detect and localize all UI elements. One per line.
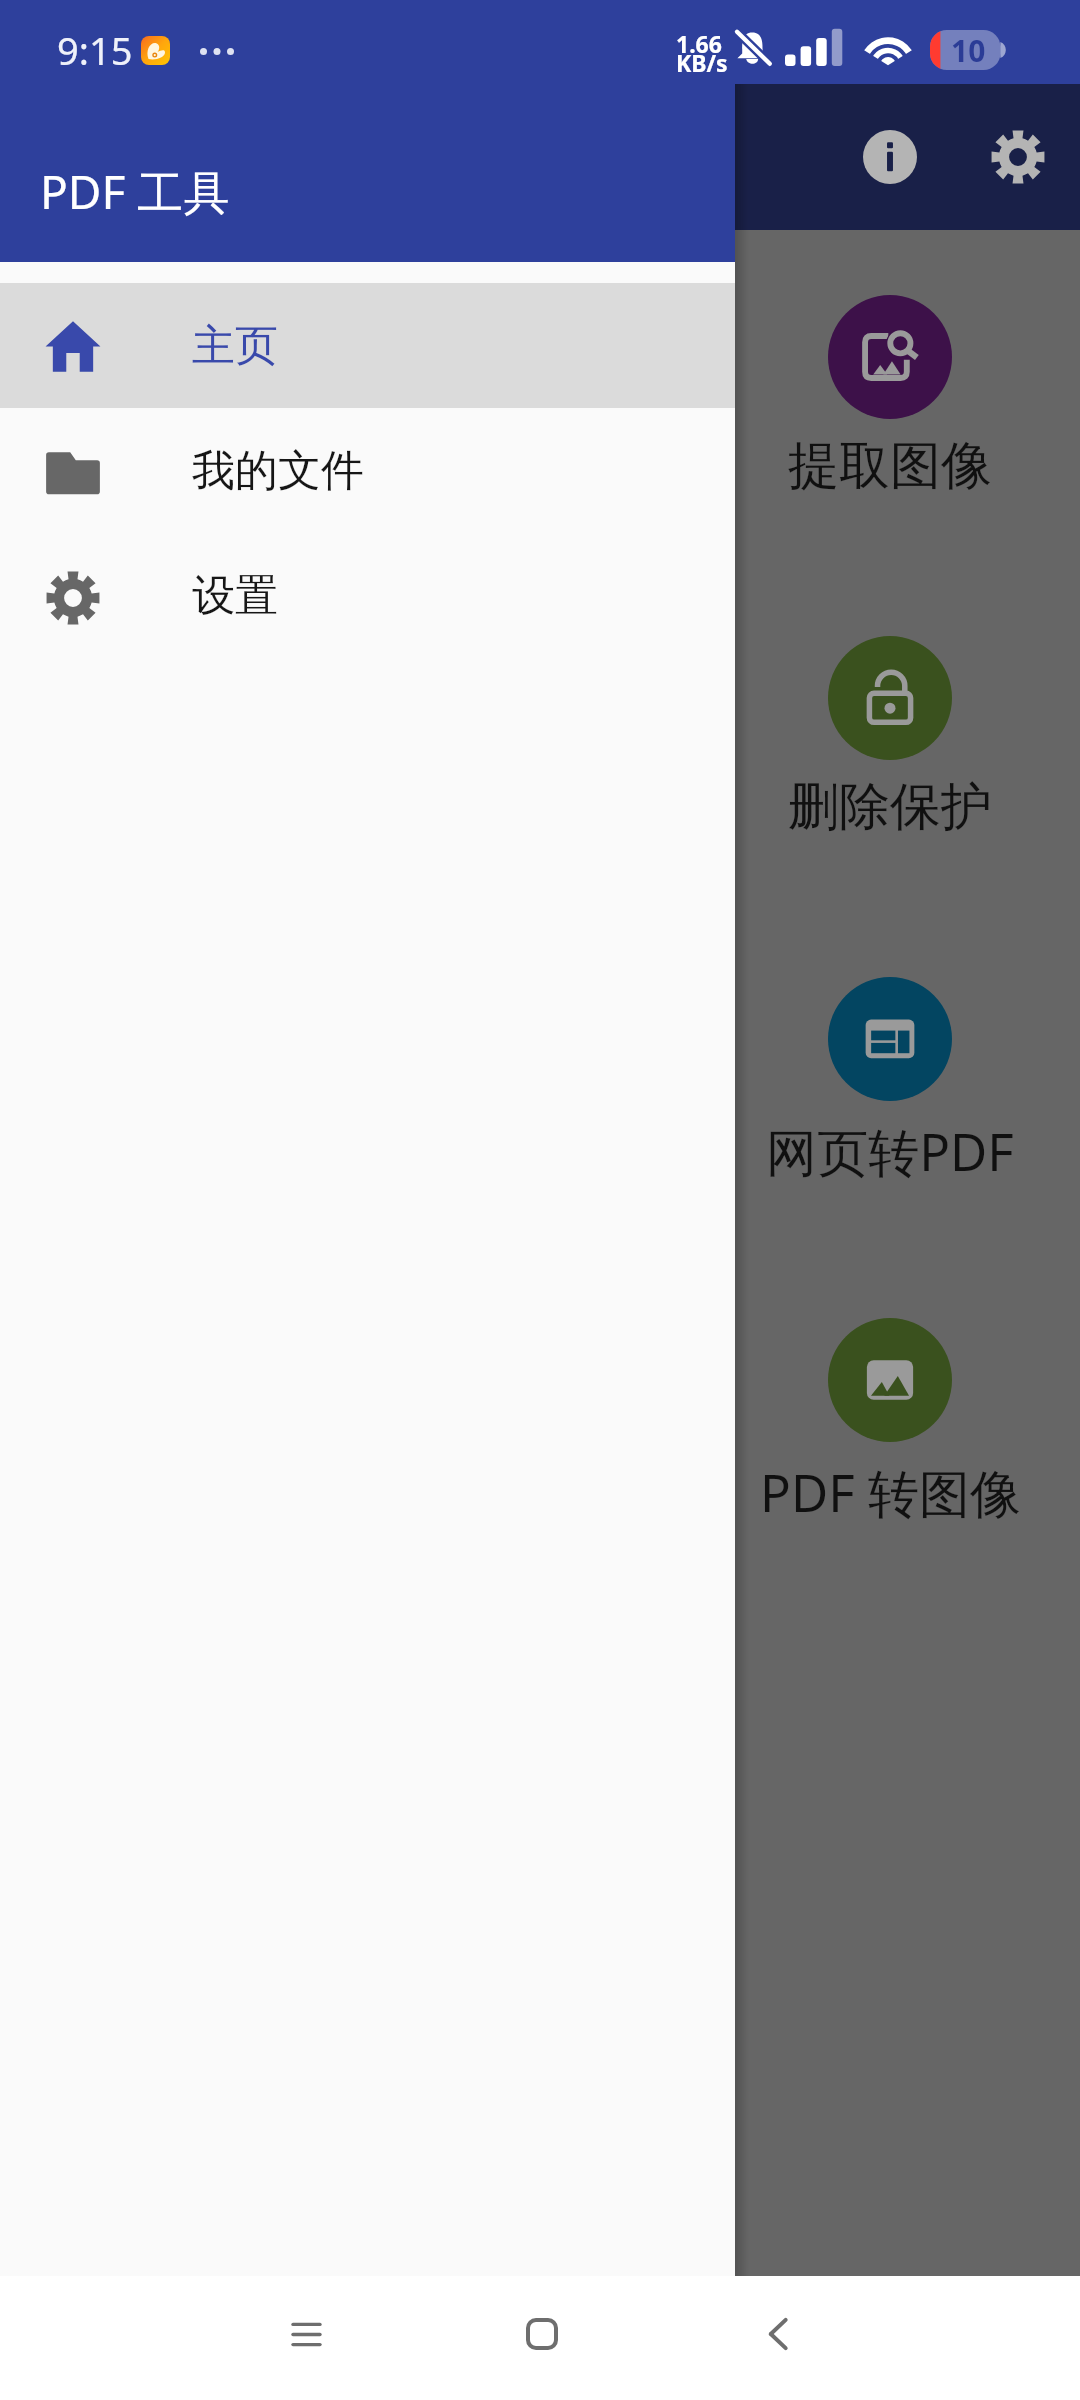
staticText: KB/s [676,47,728,78]
staticText: 9:15 [57,24,133,76]
button[interactable]: Settings [966,105,1070,209]
button[interactable]: Back [730,2286,826,2382]
staticText: 1.66 [676,28,722,59]
button[interactable]: PDF 转图像 [710,1318,1070,1527]
button[interactable]: 主页 [0,283,735,408]
staticText: PDF 转图像 [760,1457,1021,1527]
staticText: 网页转PDF [766,1116,1014,1186]
staticText: 设置 [192,569,278,623]
button[interactable]: 设置 [0,533,735,658]
staticText: 我的文件 [192,444,364,498]
button[interactable]: 我的文件 [0,408,735,533]
staticText: 提取图像 [788,434,992,498]
button[interactable]: 网页转PDF [710,977,1070,1186]
button[interactable]: Home [494,2286,590,2382]
button[interactable]: Recent apps [258,2286,354,2382]
button[interactable]: 提取图像 [710,295,1070,498]
staticText: 删除保护 [788,775,992,839]
staticText: 10 [951,30,986,70]
staticText: PDF 工具 [40,160,230,223]
staticText: 主页 [192,319,278,373]
button[interactable]: 删除保护 [710,636,1070,839]
button[interactable]: Info [838,105,942,209]
